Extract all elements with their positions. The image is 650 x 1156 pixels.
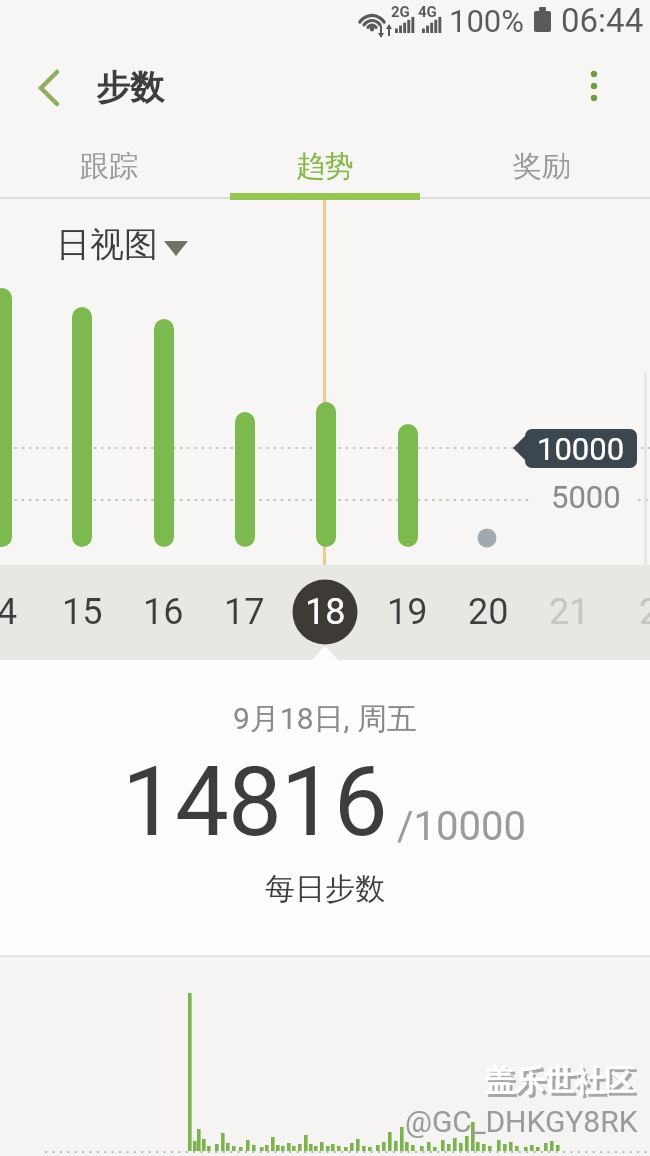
staticText: 100% [449,3,524,39]
staticText: 9月18日, 周五 [233,700,417,738]
staticText: 4G [418,3,437,21]
staticText: 奖励 [513,148,571,185]
button[interactable]: 奖励 [433,135,650,197]
staticText: 21 [549,591,590,633]
staticText: 跟踪 [80,148,138,185]
staticText: 步数 [96,66,164,109]
button[interactable]: 跟踪 [0,135,217,197]
button[interactable]: 4 [0,579,27,645]
staticText: 10000 [537,431,625,467]
staticText: /10000 [397,803,526,850]
staticText: 19 [387,591,428,633]
staticText: @GC_DHKGY8RK [405,1104,638,1139]
button[interactable]: 20 [453,579,523,645]
staticText: 趋势 [296,148,354,185]
staticText: 盖乐世社区 [484,1062,634,1100]
staticText: 2 [639,591,650,633]
button[interactable]: 21 [534,579,604,645]
staticText: 日视图 [56,223,158,266]
button[interactable]: 19 [372,579,442,645]
button[interactable]: 趋势 [217,135,433,197]
staticText: 盖乐世社区 [487,1065,637,1103]
staticText: 2G [391,3,410,21]
button[interactable] [48,222,198,266]
staticText: 15 [62,591,103,633]
staticText: 17 [224,591,265,633]
button[interactable]: 16 [128,579,198,645]
staticText: 14816 [122,746,387,856]
staticText: 4 [0,591,18,633]
staticText: 18 [305,591,346,633]
button[interactable]: 17 [209,579,279,645]
staticText: 5000 [551,479,621,515]
staticText: 06:44 [561,1,644,40]
button[interactable] [28,64,70,112]
button[interactable] [574,60,614,112]
staticText: 16 [143,591,184,633]
staticText: 20 [468,591,509,633]
staticText: 每日步数 [265,870,385,908]
button[interactable]: 15 [47,579,117,645]
button[interactable]: 18 [290,579,360,645]
